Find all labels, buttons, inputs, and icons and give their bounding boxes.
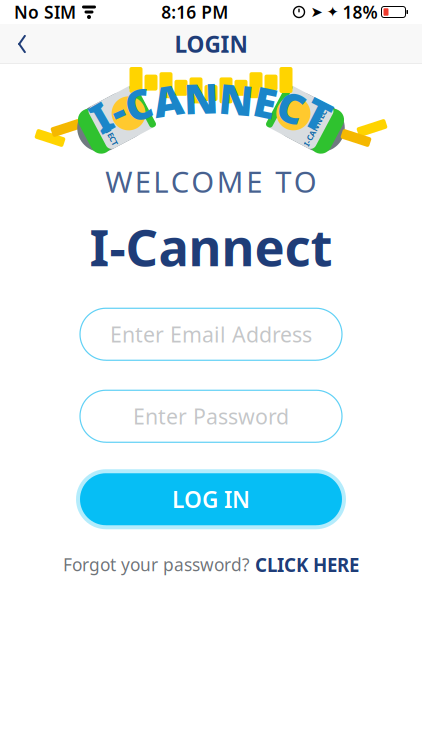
staticText: ✦: [326, 4, 338, 20]
staticText: LOGIN: [174, 29, 247, 59]
button[interactable]: LOG IN: [75, 468, 347, 530]
staticText: E: [254, 75, 277, 129]
staticText: Enter Email Address: [110, 320, 312, 348]
staticText: C: [125, 77, 152, 131]
staticText: WELCOME TO: [105, 162, 317, 201]
button[interactable]: Forgot your password?: [53, 546, 369, 583]
staticText: CLICK HERE: [255, 552, 359, 577]
staticText: LOG IN: [172, 484, 250, 514]
staticText: 8:16 PM: [161, 0, 228, 23]
button[interactable]: Enter Email Address: [80, 308, 342, 360]
staticText: I: [92, 90, 110, 144]
staticText: No SIM: [14, 0, 76, 23]
staticText: ➤: [310, 4, 322, 20]
staticText: N: [184, 71, 218, 125]
staticText: C: [278, 80, 305, 134]
button[interactable]: Enter Password: [80, 390, 342, 442]
staticText: Forgot your password?: [63, 553, 250, 576]
staticText: T: [306, 87, 330, 141]
staticText: -: [111, 83, 124, 137]
staticText: I-CANNECT: [295, 114, 340, 124]
staticText: 18%: [342, 0, 377, 23]
staticText: I-Cannect: [89, 213, 332, 280]
staticText: I-CANNECT: [81, 114, 126, 124]
staticText: A: [153, 73, 183, 127]
button[interactable]: Back: [0, 24, 44, 64]
staticText: N: [219, 72, 253, 126]
staticText: Enter Password: [133, 402, 289, 430]
